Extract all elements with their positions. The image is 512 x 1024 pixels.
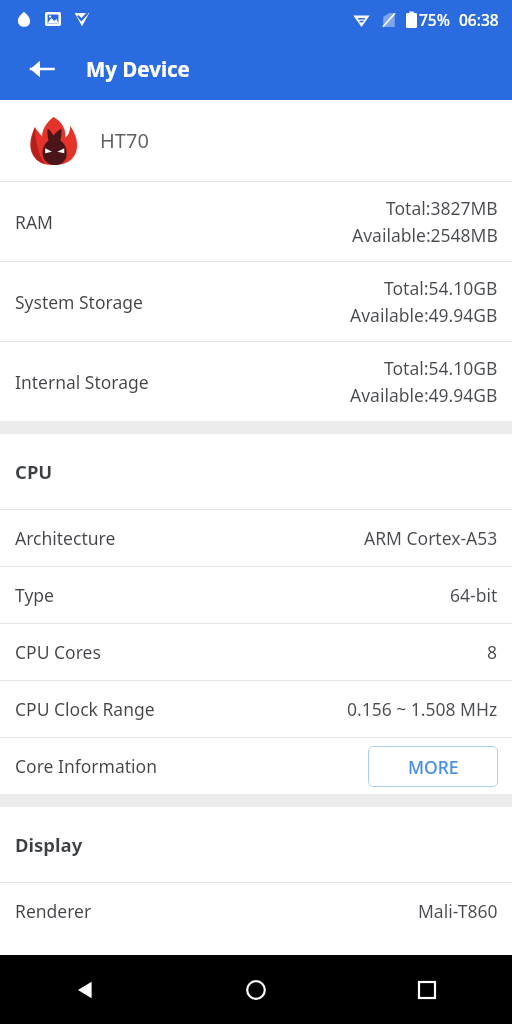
- button[interactable]: Home: [170, 955, 341, 1024]
- staticText: Available:2548MB: [352, 223, 498, 247]
- button[interactable]: Architecture: [0, 510, 512, 566]
- staticText: 0.156 ~ 1.508 MHz: [347, 697, 498, 721]
- button[interactable]: Recent apps: [341, 955, 512, 1024]
- button[interactable]: HT70: [0, 100, 512, 181]
- staticText: Type: [15, 583, 54, 607]
- staticText: Display: [15, 832, 83, 857]
- staticText: 75%: [419, 9, 450, 30]
- staticText: RAM: [15, 210, 53, 234]
- staticText: MORE: [408, 755, 459, 779]
- button[interactable]: MORE: [368, 746, 498, 787]
- staticText: Renderer: [15, 899, 92, 923]
- button[interactable]: Internal Storage: [0, 342, 512, 421]
- staticText: Available:49.94GB: [350, 383, 498, 407]
- staticText: 8: [487, 640, 498, 664]
- staticText: System Storage: [15, 290, 143, 314]
- staticText: CPU Clock Range: [15, 697, 155, 721]
- button[interactable]: Back: [14, 41, 70, 97]
- staticText: Mali-T860: [418, 899, 498, 923]
- button[interactable]: CPU Clock Range: [0, 681, 512, 737]
- staticText: Total:54.10GB: [384, 356, 498, 380]
- staticText: My Device: [86, 55, 190, 83]
- staticText: 06:38: [459, 9, 499, 30]
- staticText: Total:54.10GB: [384, 276, 498, 300]
- button[interactable]: System Storage: [0, 262, 512, 341]
- staticText: Available:49.94GB: [350, 303, 498, 327]
- staticText: 64-bit: [450, 583, 498, 607]
- button[interactable]: RAM: [0, 182, 512, 261]
- button[interactable]: Back: [0, 955, 170, 1024]
- button[interactable]: CPU Cores: [0, 624, 512, 680]
- staticText: Core Information: [15, 754, 157, 778]
- staticText: HT70: [100, 127, 149, 154]
- staticText: Internal Storage: [15, 370, 149, 394]
- staticText: Architecture: [15, 526, 116, 550]
- staticText: CPU Cores: [15, 640, 101, 664]
- button[interactable]: Renderer: [0, 883, 512, 939]
- staticText: ARM Cortex-A53: [364, 526, 498, 550]
- staticText: Total:3827MB: [386, 196, 498, 220]
- button[interactable]: Type: [0, 567, 512, 623]
- staticText: CPU: [15, 459, 53, 484]
